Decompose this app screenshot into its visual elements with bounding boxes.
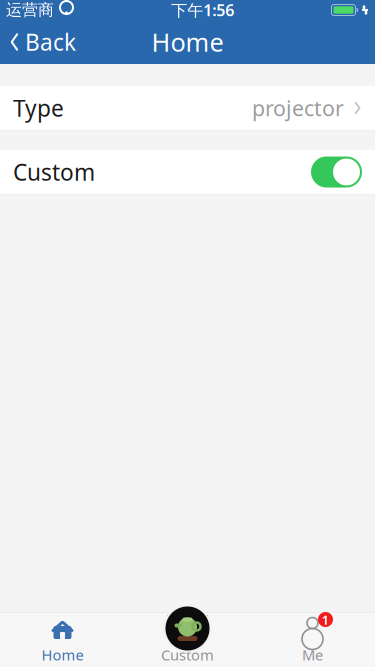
staticText: projector bbox=[252, 94, 344, 122]
staticText: Custom bbox=[161, 645, 214, 664]
staticText: Home bbox=[151, 25, 223, 59]
button[interactable]: Home bbox=[0, 613, 125, 667]
button[interactable]: Custom toggle bbox=[311, 156, 362, 187]
staticText: 1 bbox=[321, 611, 329, 628]
staticText: Custom bbox=[13, 157, 95, 187]
button[interactable]: Type bbox=[0, 85, 375, 130]
button[interactable]: 1 bbox=[250, 613, 375, 667]
staticText: Type bbox=[13, 93, 64, 123]
staticText: Me bbox=[302, 645, 323, 664]
staticText: 运营商 bbox=[6, 0, 54, 20]
button[interactable]: Back bbox=[0, 20, 85, 64]
staticText: Back bbox=[25, 27, 76, 57]
staticText: Home bbox=[41, 645, 83, 664]
button[interactable]: Custom bbox=[125, 613, 250, 667]
staticText: 下午1:56 bbox=[171, 0, 234, 21]
button[interactable]: Custom bbox=[163, 604, 211, 652]
